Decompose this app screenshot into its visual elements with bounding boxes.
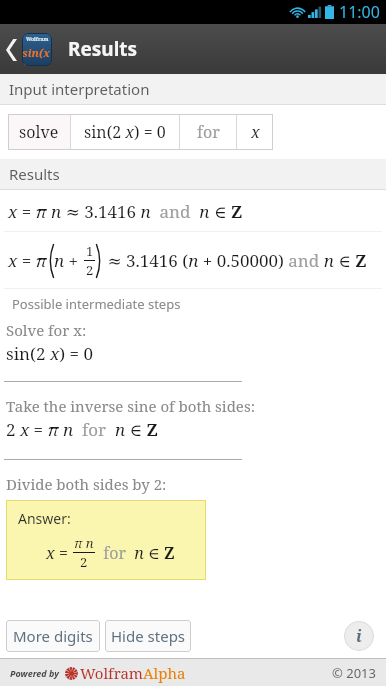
staticText: solve — [19, 121, 59, 143]
staticText: © 2013 — [332, 664, 376, 682]
staticText: 2 — [86, 261, 94, 279]
staticText: Powered by — [10, 667, 59, 679]
button[interactable]: Navigate up — [6, 24, 52, 74]
staticText: WolframAlpha — [80, 663, 186, 683]
staticText: Input interpretation — [9, 79, 150, 99]
staticText: Possible intermediate steps — [12, 295, 181, 313]
staticText: Results — [9, 164, 60, 184]
staticText: π n — [74, 534, 94, 552]
staticText: x — [251, 121, 260, 143]
button[interactable]: Hide steps — [105, 620, 191, 652]
staticText: x = π n ≈ 3.1416 n and n ∈ Z — [8, 200, 243, 223]
staticText: Wolfram — [26, 36, 49, 43]
staticText: for — [197, 121, 220, 143]
staticText: n + — [54, 249, 83, 272]
staticText: More digits — [13, 626, 93, 646]
staticText: 2 x = π n for n ∈ Z — [6, 418, 158, 441]
staticText: sin(2 x) = 0 — [6, 342, 93, 365]
staticText: for n ∈ Z — [95, 542, 175, 564]
staticText: Answer: — [18, 509, 71, 528]
staticText: x = — [46, 542, 73, 564]
button[interactable]: solve — [8, 114, 273, 150]
button[interactable]: More digits — [6, 620, 100, 652]
staticText: 1 — [86, 242, 94, 260]
staticText: 2 — [80, 553, 88, 571]
staticText: ≈ 3.1416 (n + 0.50000) and n ∈ Z — [103, 249, 367, 272]
staticText: Hide steps — [111, 626, 186, 646]
staticText: sin(2 x) = 0 — [84, 121, 166, 143]
staticText: Take the inverse sine of both sides: — [6, 396, 255, 416]
staticText: x = π — [8, 249, 47, 272]
staticText: Results — [68, 36, 138, 62]
staticText: Solve for x: — [6, 320, 87, 340]
staticText: sin(x) — [22, 45, 52, 66]
button[interactable]: Answer: — [6, 500, 206, 580]
staticText: i — [356, 625, 362, 647]
button[interactable]: Info — [344, 621, 374, 651]
staticText: 11:00 — [339, 1, 380, 23]
staticText: Divide both sides by 2: — [6, 474, 167, 494]
